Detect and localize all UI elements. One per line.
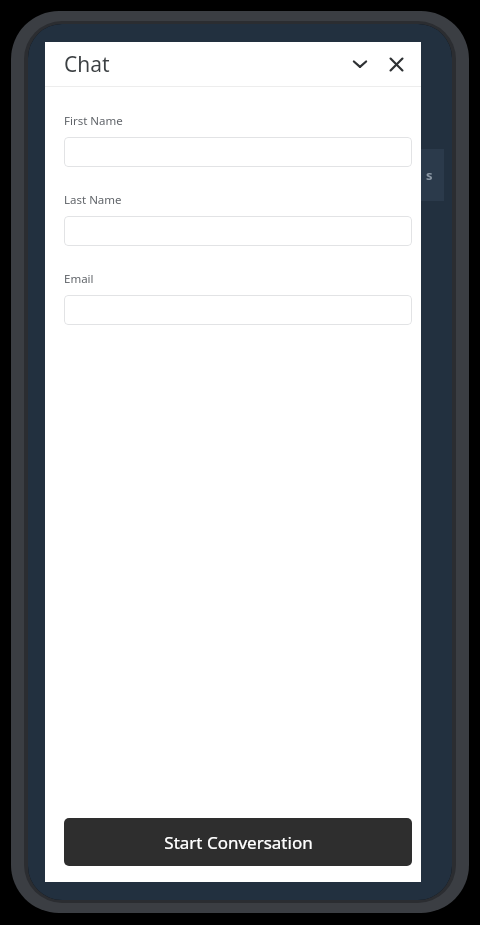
button[interactable]: Minimize chat [343, 47, 377, 81]
staticText: Email [64, 271, 94, 287]
staticText: s [426, 166, 433, 184]
button[interactable]: Start Conversation [64, 818, 412, 866]
staticText: First Name [64, 113, 123, 129]
button[interactable]: Close chat [379, 47, 413, 81]
button[interactable]: First Name input field [64, 137, 412, 167]
staticText: Start Conversation [164, 831, 313, 854]
button[interactable]: Last Name input field [64, 216, 412, 246]
staticText: Chat [64, 50, 110, 79]
button[interactable]: Email input field [64, 295, 412, 325]
staticText: Last Name [64, 192, 122, 208]
